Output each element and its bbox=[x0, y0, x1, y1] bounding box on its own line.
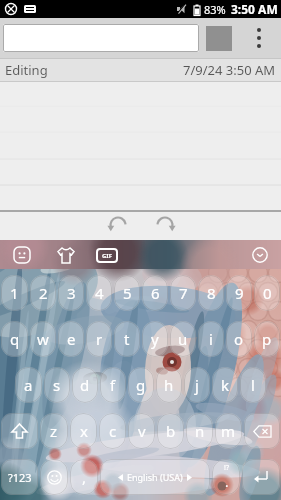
staticText: 4 bbox=[95, 283, 104, 303]
button[interactable]: g bbox=[128, 367, 154, 403]
button[interactable] bbox=[3, 24, 199, 52]
button[interactable] bbox=[247, 242, 273, 268]
button[interactable]: r bbox=[86, 321, 112, 357]
button[interactable]: f bbox=[100, 367, 126, 403]
staticText: 3 bbox=[67, 283, 76, 303]
button[interactable] bbox=[147, 213, 181, 239]
staticText: g bbox=[136, 375, 146, 395]
button[interactable]: ?123 bbox=[1, 459, 38, 495]
button[interactable]: b bbox=[157, 413, 184, 449]
staticText: w bbox=[37, 329, 49, 349]
button[interactable]: 1 bbox=[1, 275, 28, 311]
staticText: s bbox=[53, 375, 61, 395]
button[interactable]: n bbox=[186, 413, 213, 449]
button[interactable]: l bbox=[240, 367, 266, 403]
staticText: v bbox=[138, 421, 146, 441]
staticText: m bbox=[221, 421, 236, 441]
button[interactable]: v bbox=[128, 413, 155, 449]
button[interactable]: p bbox=[254, 321, 280, 357]
staticText: o bbox=[234, 329, 244, 349]
button[interactable]: 8 bbox=[198, 275, 224, 311]
button[interactable]: a bbox=[15, 367, 42, 403]
staticText: j bbox=[195, 375, 199, 395]
staticText: , bbox=[82, 467, 87, 487]
button[interactable]: English (USA) bbox=[100, 459, 210, 495]
staticText: 7 bbox=[179, 283, 188, 303]
staticText: !? bbox=[224, 463, 229, 473]
staticText: z bbox=[50, 421, 58, 441]
staticText: 8 bbox=[207, 283, 216, 303]
button[interactable]: 5 bbox=[114, 275, 140, 311]
button[interactable] bbox=[52, 241, 80, 269]
staticText: b bbox=[166, 421, 176, 441]
staticText: d bbox=[80, 375, 90, 395]
staticText: y bbox=[151, 329, 159, 349]
staticText: GIF bbox=[102, 252, 112, 260]
button[interactable]: , bbox=[70, 459, 98, 495]
staticText: k bbox=[221, 375, 230, 395]
staticText: English (USA) bbox=[127, 471, 183, 483]
staticText: e bbox=[67, 329, 76, 349]
button[interactable] bbox=[40, 459, 68, 495]
button[interactable] bbox=[8, 241, 36, 269]
button[interactable]: !? bbox=[212, 459, 240, 495]
button[interactable] bbox=[100, 213, 134, 239]
staticText: t bbox=[124, 329, 130, 349]
button[interactable]: 4 bbox=[86, 275, 112, 311]
staticText: h bbox=[164, 375, 174, 395]
button[interactable]: u bbox=[170, 321, 196, 357]
staticText: r bbox=[96, 329, 103, 349]
button[interactable]: j bbox=[184, 367, 210, 403]
button[interactable] bbox=[244, 413, 280, 449]
button[interactable]: q bbox=[1, 321, 28, 357]
button[interactable]: 0 bbox=[254, 275, 280, 311]
staticText: 0 bbox=[263, 283, 272, 303]
button[interactable] bbox=[242, 459, 280, 495]
staticText: u bbox=[178, 329, 188, 349]
button[interactable]: k bbox=[212, 367, 238, 403]
button[interactable]: w bbox=[30, 321, 56, 357]
button[interactable]: 2 bbox=[30, 275, 56, 311]
button[interactable]: d bbox=[72, 367, 98, 403]
button[interactable]: m bbox=[215, 413, 242, 449]
button[interactable]: c bbox=[99, 413, 126, 449]
staticText: 7/9/24 3:50 AM bbox=[183, 61, 276, 79]
button[interactable]: s bbox=[44, 367, 70, 403]
staticText: a bbox=[24, 375, 33, 395]
button[interactable]: 6 bbox=[142, 275, 168, 311]
staticText: 83% bbox=[204, 2, 226, 17]
staticText: ?123 bbox=[8, 470, 32, 485]
staticText: Editing bbox=[5, 61, 48, 79]
button[interactable]: i bbox=[198, 321, 224, 357]
staticText: p bbox=[262, 329, 272, 349]
button[interactable]: 9 bbox=[226, 275, 252, 311]
staticText: 6 bbox=[151, 283, 160, 303]
button[interactable]: t bbox=[114, 321, 140, 357]
staticText: c bbox=[109, 421, 117, 441]
staticText: 1 bbox=[10, 283, 19, 303]
staticText: . bbox=[225, 473, 229, 491]
button[interactable]: o bbox=[226, 321, 252, 357]
button[interactable]: 3 bbox=[58, 275, 84, 311]
staticText: n bbox=[195, 421, 205, 441]
button[interactable]: 7 bbox=[170, 275, 196, 311]
button[interactable]: x bbox=[70, 413, 97, 449]
staticText: 5 bbox=[123, 283, 132, 303]
button[interactable]: GIF bbox=[96, 248, 118, 263]
staticText: l bbox=[251, 375, 255, 395]
button[interactable]: y bbox=[142, 321, 168, 357]
button[interactable]: z bbox=[40, 413, 68, 449]
staticText: i bbox=[209, 329, 213, 349]
staticText: 9 bbox=[235, 283, 244, 303]
staticText: q bbox=[10, 329, 20, 349]
button[interactable] bbox=[246, 21, 272, 55]
button[interactable]: h bbox=[156, 367, 182, 403]
staticText: f bbox=[110, 375, 116, 395]
button[interactable] bbox=[1, 413, 38, 449]
staticText: x bbox=[80, 421, 88, 441]
button[interactable]: e bbox=[58, 321, 84, 357]
staticText: 2 bbox=[39, 283, 48, 303]
staticText: 3:50 AM bbox=[231, 1, 278, 17]
